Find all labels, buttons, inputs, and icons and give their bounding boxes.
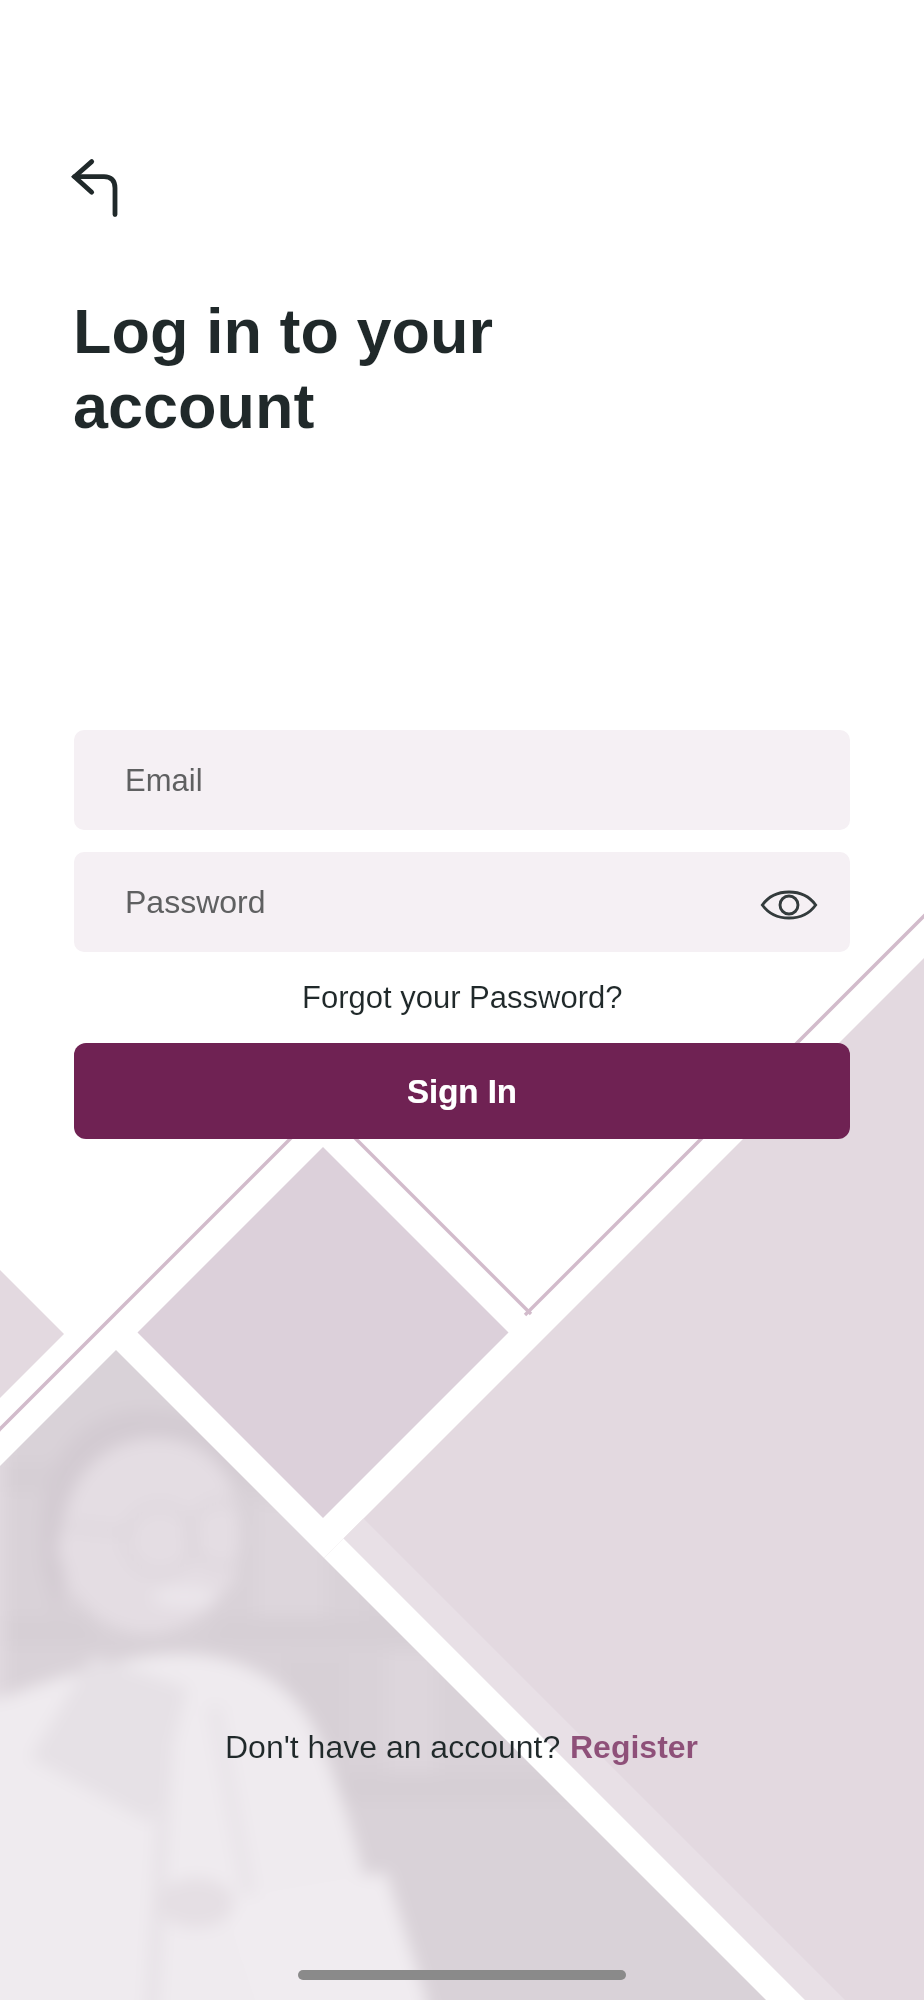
staticText: Sign In xyxy=(407,1073,517,1110)
button[interactable]: Register xyxy=(570,1729,699,1765)
staticText: Register xyxy=(570,1729,699,1765)
staticText: Email xyxy=(125,763,203,798)
staticText: Password xyxy=(125,884,266,920)
button[interactable]: Sign In xyxy=(74,1043,850,1139)
button[interactable]: Show password xyxy=(758,874,820,936)
staticText: Forgot your Password? xyxy=(302,980,623,1015)
button[interactable]: Forgot your Password? xyxy=(288,972,637,1023)
staticText: Log in to your account xyxy=(73,296,493,441)
button[interactable]: Back xyxy=(60,148,136,224)
button[interactable]: Password xyxy=(74,852,850,952)
button[interactable]: Email xyxy=(74,730,850,830)
staticText: Don't have an account? xyxy=(225,1729,570,1765)
